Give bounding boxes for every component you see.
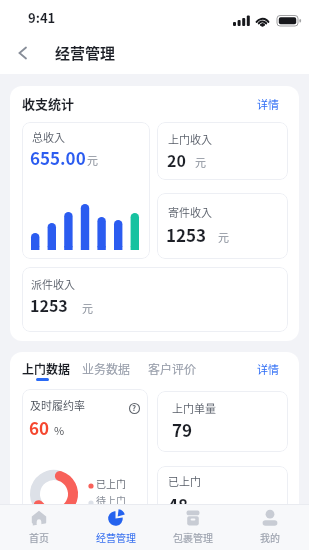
staticText: 1253 xyxy=(166,222,207,247)
staticText: 我的 xyxy=(260,530,280,544)
staticText: 总收入 xyxy=(32,129,65,145)
staticText: 及时履约率 xyxy=(30,397,85,413)
staticText: 收支统计 xyxy=(22,94,75,113)
staticText: 9:41 xyxy=(28,8,56,27)
staticText: 经营管理 xyxy=(55,42,116,64)
staticText: 经营管理 xyxy=(96,530,136,544)
button[interactable]: 已上门 xyxy=(157,466,288,550)
button[interactable]: 上门数据 xyxy=(22,360,71,377)
staticText: 元 xyxy=(87,152,98,168)
button[interactable]: 派件收入 xyxy=(22,267,288,332)
staticText: % xyxy=(54,422,65,438)
button[interactable]: 总收入 xyxy=(22,122,150,259)
staticText: 60 xyxy=(29,415,50,440)
staticText: 首页 xyxy=(29,530,49,544)
button[interactable]: 上门收入 xyxy=(157,122,288,180)
staticText: 元 xyxy=(82,300,93,316)
staticText: 元 xyxy=(195,154,206,170)
staticText: 寄件收入 xyxy=(168,204,212,220)
staticText: 包裹管理 xyxy=(173,530,213,544)
button[interactable]: 首页 xyxy=(1,504,77,550)
staticText: 已上门 xyxy=(168,473,201,489)
button[interactable]: 业务数据 xyxy=(82,360,131,377)
staticText: 48 xyxy=(168,492,189,517)
staticText: 79 xyxy=(172,417,193,442)
button[interactable] xyxy=(17,46,29,60)
staticText: 上门收入 xyxy=(168,131,212,147)
button[interactable]: 寄件收入 xyxy=(157,193,288,259)
button[interactable]: 上门单量 xyxy=(157,391,288,452)
staticText: 655.00 xyxy=(30,145,86,170)
button[interactable]: 客户评价 xyxy=(148,360,197,377)
staticText: 派件收入 xyxy=(31,276,75,292)
button[interactable]: 包裹管理 xyxy=(155,504,231,550)
button[interactable]: 详情 xyxy=(257,96,279,112)
staticText: ? xyxy=(132,402,137,414)
staticText: 元 xyxy=(218,229,229,245)
staticText: 已上门 xyxy=(96,476,126,490)
button[interactable]: 我的 xyxy=(232,504,308,550)
staticText: 1253 xyxy=(30,293,68,316)
button[interactable]: 及时履约率 xyxy=(22,389,148,529)
staticText: 上门单量 xyxy=(172,400,216,416)
staticText: 待上门 xyxy=(96,493,126,507)
staticText: 20 xyxy=(167,148,186,171)
button[interactable]: 经营管理 xyxy=(78,504,154,550)
button[interactable]: 详情 xyxy=(257,361,279,377)
